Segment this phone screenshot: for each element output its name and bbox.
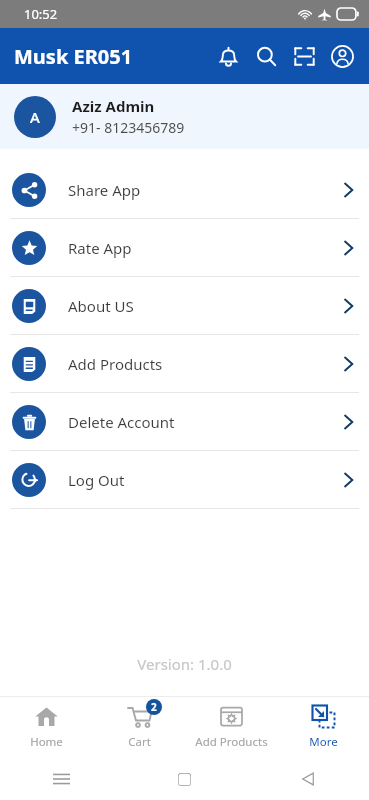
button[interactable]: Home xyxy=(123,758,246,800)
button[interactable]: About US xyxy=(0,277,369,334)
staticText: More xyxy=(309,734,338,750)
button[interactable]: More xyxy=(277,697,369,758)
button[interactable]: Scan code xyxy=(285,37,323,75)
staticText: About US xyxy=(68,296,344,316)
staticText: Log Out xyxy=(68,470,344,490)
staticText: 2 xyxy=(151,700,157,714)
button[interactable]: A xyxy=(0,84,369,149)
button[interactable]: Search xyxy=(247,37,285,75)
button[interactable]: Rate App xyxy=(0,219,369,276)
button[interactable]: 2 xyxy=(93,697,185,758)
staticText: Add Products xyxy=(68,354,344,374)
button[interactable]: Back xyxy=(246,758,369,800)
staticText: Version: 1.0.0 xyxy=(137,654,232,674)
staticText: +91- 8123456789 xyxy=(72,118,185,137)
button[interactable]: Log Out xyxy=(0,451,369,508)
staticText: Rate App xyxy=(68,238,344,258)
button[interactable]: Account xyxy=(323,37,361,75)
staticText: Aziz Admin xyxy=(72,96,155,116)
button[interactable]: Share App xyxy=(0,161,369,218)
staticText: A xyxy=(30,107,40,127)
button[interactable]: Notifications xyxy=(209,37,247,75)
staticText: Delete Account xyxy=(68,412,344,432)
button[interactable]: Home xyxy=(0,697,93,758)
button[interactable]: Delete Account xyxy=(0,393,369,450)
staticText: Cart xyxy=(128,734,151,750)
staticText: Home xyxy=(30,734,63,750)
button[interactable]: Add Products xyxy=(185,697,277,758)
button[interactable]: Add Products xyxy=(0,335,369,392)
button[interactable]: Recents xyxy=(0,758,123,800)
staticText: Add Products xyxy=(195,734,268,750)
staticText: Musk ER051 xyxy=(14,43,133,70)
staticText: 10:52 xyxy=(24,5,58,23)
staticText: Share App xyxy=(68,180,344,200)
